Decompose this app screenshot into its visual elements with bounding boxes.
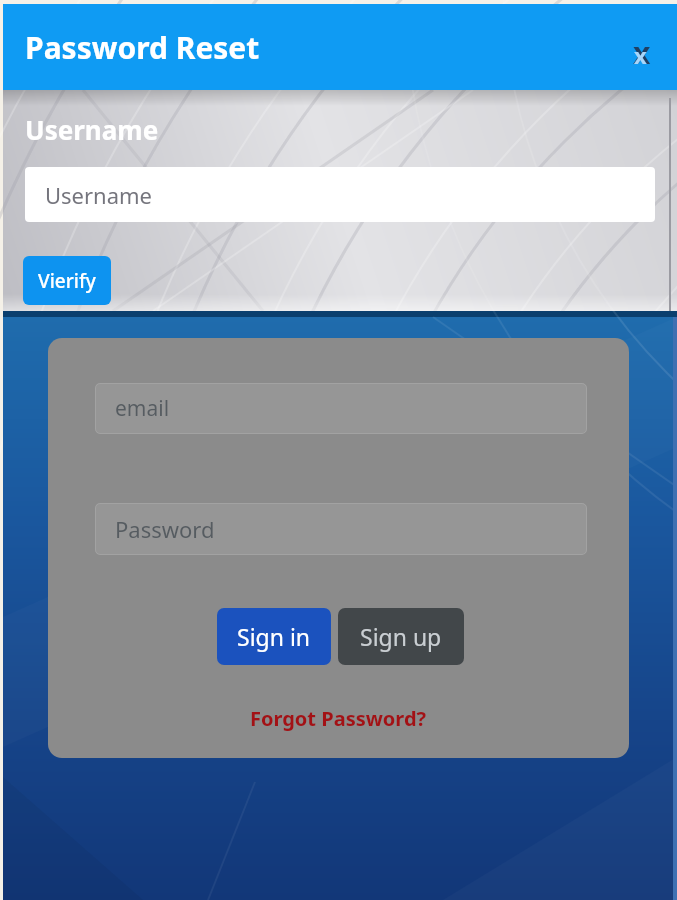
staticText: email <box>115 394 170 423</box>
staticText: Forgot Password? <box>250 705 427 732</box>
staticText: Password Reset <box>25 27 260 68</box>
staticText: Sign up <box>360 621 442 652</box>
staticText: x <box>634 40 647 70</box>
staticText: Password <box>115 514 215 544</box>
staticText: Sign in <box>237 621 311 652</box>
staticText: x <box>633 32 651 73</box>
staticText: Username <box>45 180 153 210</box>
staticText: Username <box>25 112 159 147</box>
staticText: Vierify <box>38 268 96 294</box>
